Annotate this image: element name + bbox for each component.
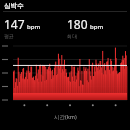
staticText: 최대 bbox=[67, 33, 77, 39]
button[interactable]: 심박수 bbox=[0, 0, 130, 11]
button[interactable]: 180 bbox=[67, 16, 130, 39]
button[interactable] bbox=[0, 44, 130, 102]
staticText: 시간(km) bbox=[54, 113, 77, 121]
staticText: 147 bbox=[4, 16, 25, 32]
button[interactable]: 147 bbox=[4, 16, 65, 39]
staticText: 180 bbox=[67, 16, 88, 32]
staticText: 평균 bbox=[4, 33, 14, 39]
staticText: 심박수 bbox=[4, 2, 24, 10]
staticText: bpm bbox=[27, 23, 41, 31]
staticText: bpm bbox=[90, 23, 104, 31]
